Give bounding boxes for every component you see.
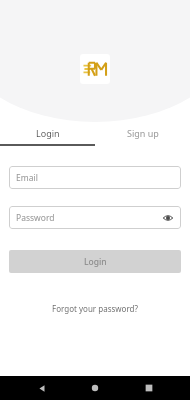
staticText: Login bbox=[84, 256, 107, 268]
button[interactable]: Forgot your password? bbox=[0, 299, 190, 317]
button[interactable]: Password bbox=[9, 206, 181, 229]
button[interactable]: Sign up bbox=[95, 120, 190, 146]
button[interactable]: Show password bbox=[161, 211, 175, 225]
staticText: Login bbox=[36, 127, 60, 139]
button[interactable]: Recent apps bbox=[137, 376, 161, 400]
button[interactable]: Back bbox=[30, 376, 54, 400]
staticText: Sign up bbox=[127, 127, 159, 139]
button[interactable]: Login bbox=[0, 120, 95, 146]
button[interactable]: Login bbox=[9, 250, 181, 273]
staticText: Forgot your password? bbox=[52, 303, 138, 314]
button[interactable]: Home bbox=[83, 376, 107, 400]
staticText: Email bbox=[16, 172, 38, 184]
button[interactable]: Email bbox=[9, 166, 181, 189]
staticText: Password bbox=[16, 212, 55, 224]
